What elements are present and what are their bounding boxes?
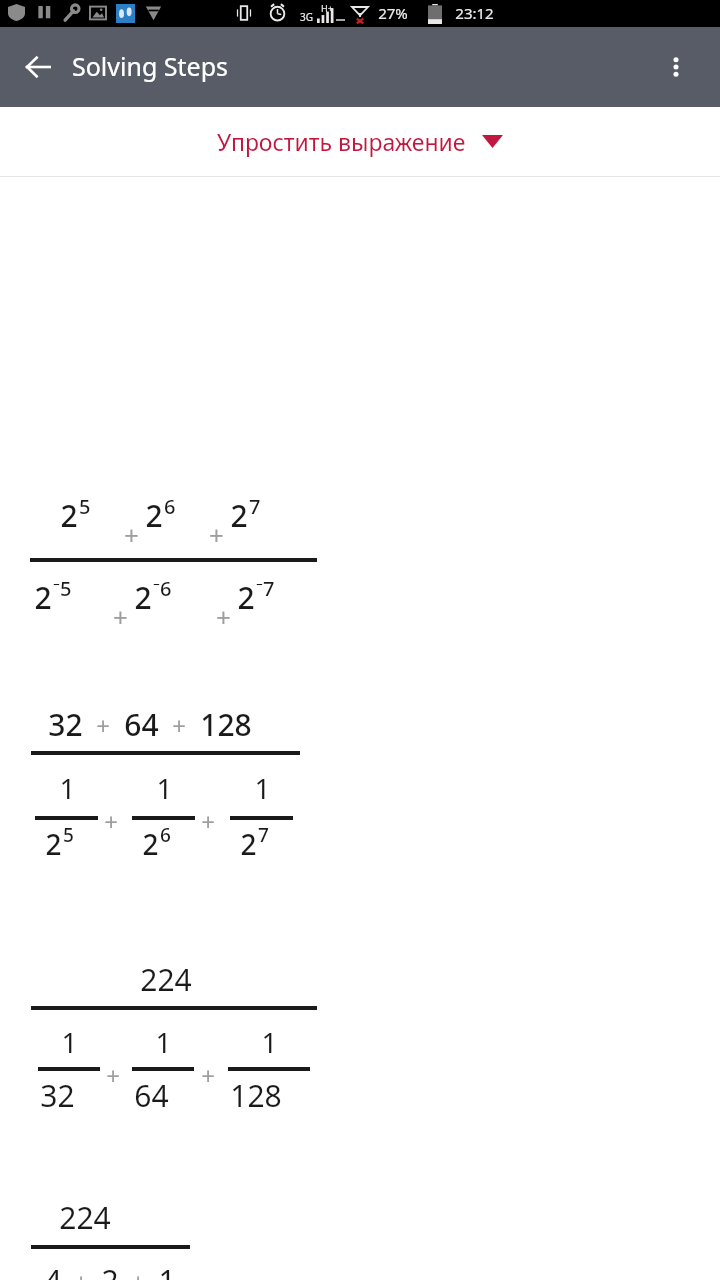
staticText: 6 [164, 493, 176, 520]
staticText: 2 [142, 825, 159, 863]
staticText: 1 [158, 1260, 176, 1280]
staticText: 2 [34, 577, 52, 618]
staticText: 2 [237, 577, 255, 618]
staticText: 64 [124, 704, 159, 745]
staticText: 64 [134, 1075, 169, 1116]
staticText: 2 [45, 825, 62, 863]
staticText: ⁻6 [153, 575, 172, 602]
staticText: 5 [79, 493, 91, 520]
staticText: 5 [63, 822, 74, 848]
button[interactable]: More options [652, 43, 700, 91]
staticText: 1 [155, 1023, 172, 1061]
staticText: 3G [300, 10, 313, 24]
staticText: 224 [140, 959, 192, 1000]
staticText: + [74, 1265, 88, 1280]
button[interactable]: Back [14, 43, 62, 91]
staticText: 7 [258, 822, 269, 848]
staticText: + [104, 805, 118, 838]
staticText: 32 [48, 704, 83, 745]
staticText: 2 [230, 495, 248, 536]
staticText: + [201, 1059, 215, 1092]
staticText: 1 [156, 769, 173, 807]
staticText: Solving Steps [72, 49, 228, 83]
staticText: 23:12 [455, 3, 494, 23]
staticText: + [113, 599, 128, 634]
staticText: ⁻7 [256, 575, 275, 602]
staticText: 1 [59, 769, 76, 807]
staticText: + [96, 709, 110, 742]
staticText: 2 [101, 1260, 119, 1280]
staticText: 2 [240, 825, 257, 863]
staticText: 2 [134, 577, 152, 618]
staticText: + [216, 599, 231, 634]
staticText: + [106, 1059, 120, 1092]
staticText: 1 [61, 1023, 78, 1061]
staticText: ⁻5 [53, 575, 72, 602]
staticText: + [131, 1265, 145, 1280]
staticText: + [172, 709, 186, 742]
staticText: 1 [254, 769, 271, 807]
staticText: + [209, 517, 224, 552]
staticText: 2 [145, 495, 163, 536]
staticText: 1 [261, 1023, 278, 1061]
staticText: 2 [60, 495, 78, 536]
staticText: 32 [40, 1075, 75, 1116]
staticText: 27% [378, 3, 408, 23]
staticText: + [201, 805, 215, 838]
staticText: H+ [321, 2, 333, 14]
staticText: 6 [160, 822, 171, 848]
staticText: 7 [249, 493, 261, 520]
staticText: 4 [44, 1260, 62, 1280]
staticText: Упростить выражение [217, 126, 466, 157]
staticText: 128 [200, 704, 252, 745]
staticText: + [124, 517, 139, 552]
staticText: 128 [230, 1075, 282, 1116]
button[interactable]: Упростить выражение [209, 120, 511, 163]
staticText: 224 [59, 1197, 111, 1238]
